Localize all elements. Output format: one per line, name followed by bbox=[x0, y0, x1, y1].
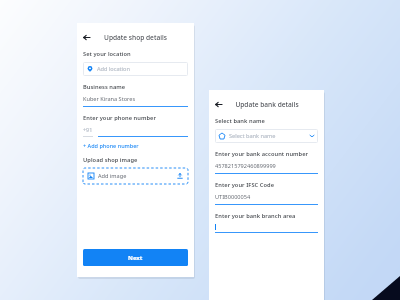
staticText: UTIB0000054 bbox=[215, 193, 251, 201]
staticText: Select bank name bbox=[215, 117, 265, 125]
staticText: Enter your IFSC Code bbox=[215, 181, 275, 189]
staticText: Update shop details bbox=[104, 33, 167, 42]
button[interactable]: 4578215792460899999 bbox=[215, 162, 318, 174]
staticText: Add image bbox=[98, 172, 127, 180]
staticText: Upload shop image bbox=[83, 156, 138, 164]
staticText: + Add phone number bbox=[83, 142, 139, 149]
staticText: Enter your phone number bbox=[83, 114, 156, 122]
button[interactable]: Add image bbox=[83, 168, 188, 184]
staticText: Next bbox=[128, 254, 143, 262]
other: Expand bbox=[310, 134, 314, 138]
staticText: Add location bbox=[97, 65, 130, 73]
button[interactable]: + Add phone number bbox=[83, 142, 139, 149]
staticText: Enter your bank branch area bbox=[215, 212, 296, 220]
staticText: Kuber Kirana Stores bbox=[83, 95, 136, 103]
button[interactable]: Add location bbox=[83, 62, 188, 76]
staticText: Set your location bbox=[83, 50, 131, 58]
staticText: Enter your bank account number bbox=[215, 150, 309, 158]
button[interactable]: Back bbox=[215, 101, 222, 108]
staticText: Select bank name bbox=[229, 132, 276, 140]
staticText: +91 bbox=[83, 126, 93, 133]
button[interactable]: Kuber Kirana Stores bbox=[83, 95, 188, 107]
button[interactable]: +91 bbox=[83, 126, 188, 137]
button[interactable]: Select bank name bbox=[215, 129, 318, 143]
other: Upload bbox=[177, 173, 183, 179]
button[interactable]: Back bbox=[83, 34, 90, 41]
button[interactable]: Next bbox=[83, 249, 188, 266]
staticText: Update bank details bbox=[235, 100, 299, 109]
staticText: Business name bbox=[83, 83, 126, 91]
staticText: 4578215792460899999 bbox=[215, 162, 276, 170]
button[interactable] bbox=[215, 224, 318, 233]
button[interactable]: UTIB0000054 bbox=[215, 193, 318, 205]
